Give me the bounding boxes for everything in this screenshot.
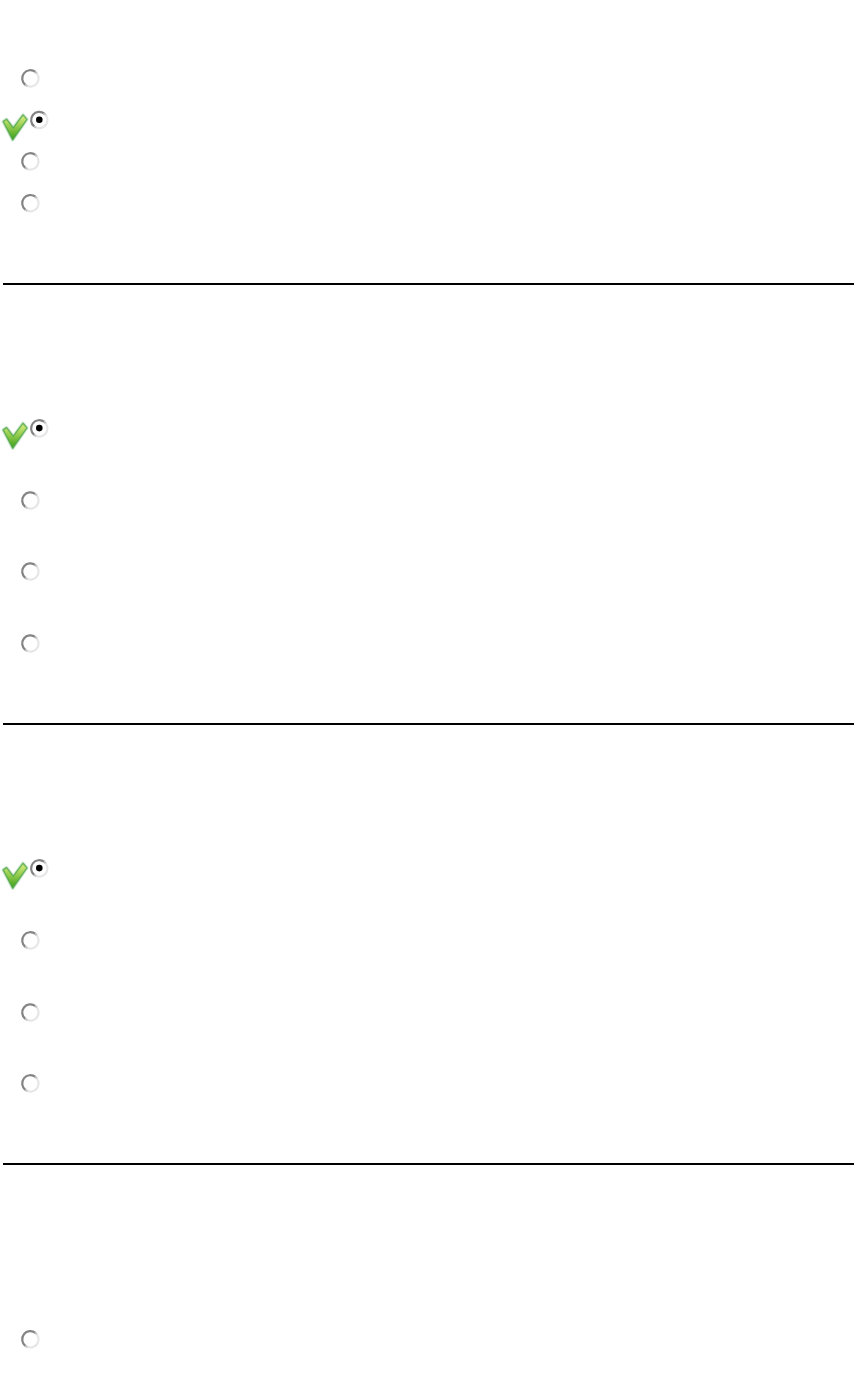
button[interactable]: Answer option [0,555,857,587]
button[interactable]: Selected answer option [0,852,857,884]
button[interactable]: Selected answer option [0,412,857,444]
button[interactable]: Answer option [0,1067,857,1099]
button[interactable]: Answer option [0,145,857,177]
button[interactable]: Answer option [0,627,857,659]
button[interactable]: Answer option [0,996,857,1028]
button[interactable]: Answer option [0,924,857,956]
button[interactable]: Answer option [0,1323,857,1355]
button[interactable]: Answer option [0,187,857,219]
button[interactable]: Answer option [0,484,857,516]
button[interactable]: Selected answer option [0,104,857,136]
button[interactable]: Answer option [0,62,857,94]
